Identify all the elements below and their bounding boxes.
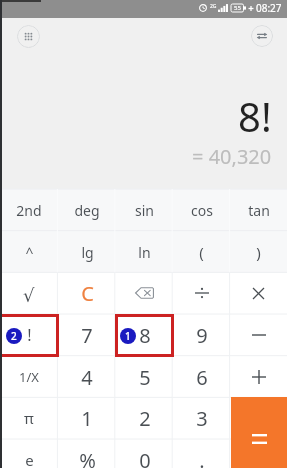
button[interactable]: 0 [116, 439, 173, 468]
staticText: C [81, 280, 94, 307]
button[interactable]: π [0, 397, 58, 439]
button[interactable]: tan [230, 189, 287, 231]
staticText: = 40,320 [192, 143, 272, 170]
staticText: ^ [25, 243, 34, 262]
staticText: 3 [196, 405, 208, 432]
button[interactable] [230, 314, 287, 356]
button[interactable]: 7 [58, 314, 116, 356]
staticText: 7 [81, 322, 93, 349]
staticText: ( [199, 242, 204, 262]
button[interactable] [230, 356, 287, 398]
staticText: e [25, 450, 34, 468]
button[interactable]: lg [58, 231, 116, 273]
button[interactable]: 8 [116, 314, 173, 356]
button[interactable]: % [58, 439, 116, 468]
button[interactable] [230, 397, 287, 439]
staticText: sin [135, 201, 154, 220]
staticText: 08:27 [256, 1, 282, 15]
staticText: 2 [139, 405, 151, 432]
button[interactable] [230, 439, 287, 468]
staticText: 4 [81, 364, 93, 391]
button[interactable]: e [0, 439, 58, 468]
button[interactable]: 6 [173, 356, 230, 398]
staticText: 1 [125, 329, 131, 343]
button[interactable]: 4 [58, 356, 116, 398]
button[interactable]: ! [0, 314, 58, 356]
button[interactable] [230, 272, 287, 314]
staticText: tan [248, 201, 270, 220]
staticText: 8 [139, 322, 151, 349]
staticText: 9 [196, 322, 208, 349]
staticText: 5 [139, 364, 151, 391]
button[interactable] [173, 272, 230, 314]
button[interactable]: deg [58, 189, 116, 231]
staticText: deg [74, 201, 100, 220]
button[interactable]: 3 [173, 397, 230, 439]
staticText: lg [81, 243, 94, 262]
button[interactable]: 1/X [0, 356, 58, 398]
staticText: π [24, 408, 34, 428]
staticText: 1/X [19, 368, 39, 386]
staticText: 55 [234, 4, 241, 12]
staticText: 8! [238, 89, 272, 143]
staticText: 6 [196, 364, 208, 391]
button[interactable]: ^ [0, 231, 58, 273]
button[interactable]: sin [116, 189, 173, 231]
staticText: 1 [81, 405, 93, 432]
button[interactable]: √ [0, 272, 58, 314]
button[interactable]: ln [116, 231, 173, 273]
staticText: 0 [139, 447, 151, 468]
button[interactable]: . [173, 439, 230, 468]
button[interactable]: 5 [116, 356, 173, 398]
button[interactable]: cos [173, 189, 230, 231]
button[interactable]: Keypad [17, 25, 40, 48]
button[interactable]: 2nd [0, 189, 58, 231]
staticText: 2 [11, 329, 17, 343]
button[interactable]: C [58, 272, 116, 314]
button[interactable]: Equals [231, 397, 287, 468]
staticText: cos [191, 201, 213, 220]
staticText: ) [256, 242, 261, 262]
staticText: 2G [210, 3, 217, 10]
button[interactable]: 2 [116, 397, 173, 439]
staticText: ! [27, 324, 32, 346]
button[interactable]: ) [230, 231, 287, 273]
button[interactable]: Unit converter [251, 25, 273, 47]
button[interactable]: ( [173, 231, 230, 273]
staticText: 2nd [16, 201, 42, 220]
button[interactable]: 1 [58, 397, 116, 439]
staticText: √ [23, 285, 35, 306]
staticText: . [199, 447, 205, 468]
button[interactable]: 9 [173, 314, 230, 356]
staticText: % [79, 447, 96, 468]
staticText: ln [138, 243, 151, 262]
button[interactable] [116, 272, 173, 314]
